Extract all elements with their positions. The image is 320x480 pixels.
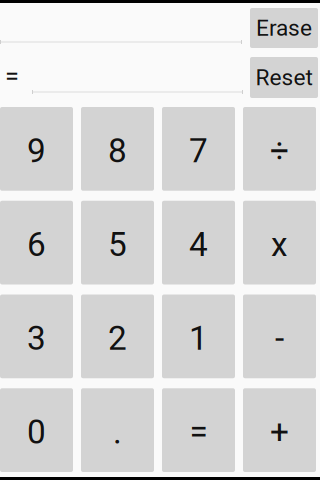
- button[interactable]: ÷: [243, 107, 316, 191]
- staticText: x: [271, 225, 288, 264]
- button[interactable]: -: [243, 294, 316, 378]
- staticText: 9: [27, 131, 46, 170]
- button[interactable]: Erase: [250, 8, 318, 48]
- staticText: 3: [27, 319, 46, 358]
- button[interactable]: Reset: [250, 57, 318, 98]
- button[interactable]: 7: [162, 107, 235, 191]
- staticText: 5: [108, 225, 127, 264]
- staticText: 4: [189, 225, 208, 264]
- staticText: 7: [189, 131, 208, 170]
- staticText: 2: [108, 319, 127, 358]
- button[interactable]: 1: [162, 294, 235, 378]
- button[interactable]: =: [162, 388, 235, 472]
- button[interactable]: .: [81, 388, 154, 472]
- staticText: -: [275, 319, 284, 358]
- button[interactable]: 8: [81, 107, 154, 191]
- button[interactable]: 6: [0, 201, 73, 285]
- staticText: +: [270, 413, 289, 452]
- button[interactable]: 3: [0, 294, 73, 378]
- staticText: ÷: [270, 131, 289, 170]
- button[interactable]: x: [243, 201, 316, 285]
- staticText: 6: [27, 225, 46, 264]
- staticText: 0: [27, 413, 46, 452]
- button[interactable]: 0: [0, 388, 73, 472]
- button[interactable]: 2: [81, 294, 154, 378]
- button[interactable]: 9: [0, 107, 73, 191]
- staticText: 8: [108, 131, 127, 170]
- staticText: Reset: [255, 64, 312, 91]
- button[interactable]: +: [243, 388, 316, 472]
- staticText: Erase: [256, 15, 312, 41]
- button[interactable]: 5: [81, 201, 154, 285]
- staticText: 1: [189, 319, 208, 358]
- staticText: .: [113, 413, 122, 452]
- staticText: =: [189, 413, 207, 452]
- button[interactable]: 4: [162, 201, 235, 285]
- staticText: =: [5, 61, 19, 91]
